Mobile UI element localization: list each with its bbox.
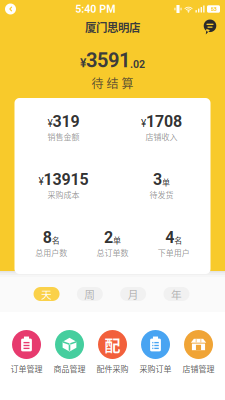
staticText: 厦门思明店 [85,19,140,35]
staticText: 63 [210,5,216,12]
staticText: 单 [113,234,121,246]
staticText: 店铺收入 [145,131,177,142]
staticText: 店铺管理 [182,363,214,374]
staticText: 待 结 算 [91,74,133,92]
button[interactable]: 周 [77,287,103,301]
button[interactable]: 店铺管理 [177,330,220,373]
button[interactable]: 消息 [199,17,221,37]
staticText: 采购成本 [47,189,79,200]
staticText: 配件采购 [96,363,128,374]
staticText: 订单管理 [10,363,42,374]
staticText: 3591 [86,49,130,72]
staticText: 周 [84,286,95,302]
button[interactable]: 返回 [5,3,16,14]
staticText: 总用户数 [35,247,67,258]
staticText: 年 [171,286,182,302]
button[interactable]: 天 [33,287,59,301]
button[interactable]: ¥ [14,115,112,141]
staticText: 13915 [43,170,88,189]
staticText: 销售金额 [47,131,79,142]
button[interactable]: 月 [120,287,146,301]
staticText: 单 [162,176,170,188]
staticText: 1708 [146,112,182,131]
button[interactable]: 2 [82,231,143,257]
button[interactable]: 8 [20,231,82,257]
staticText: 待发货 [149,189,173,200]
button[interactable]: 4 [143,231,204,257]
staticText: ¥ [38,176,43,187]
staticText: 总订单数 [96,247,128,258]
staticText: 月 [128,286,139,302]
staticText: 319 [52,112,79,131]
staticText: 名 [52,234,60,246]
button[interactable]: ¥ [14,173,112,199]
staticText: 2 [104,228,113,247]
staticText: 天 [41,286,52,302]
staticText: 3 [153,170,162,189]
staticText: ¥ [80,56,86,70]
staticText: 名 [174,234,182,246]
staticText: 8 [43,228,52,247]
button[interactable]: 年 [163,287,189,301]
staticText: ¥ [141,118,146,129]
staticText: 采购订单 [139,363,171,374]
staticText: 商品管理 [53,363,85,374]
button[interactable]: 订单管理 [5,330,48,373]
staticText: 4 [165,228,174,247]
button[interactable]: 采购订单 [134,330,177,373]
staticText: 下单用户 [158,247,190,258]
button[interactable]: 3 [112,173,210,199]
staticText: 配 [104,333,120,356]
button[interactable]: 配 [91,330,134,373]
button[interactable]: 商品管理 [48,330,91,373]
staticText: .02 [130,58,145,71]
staticText: 5:40 PM [75,3,115,15]
button[interactable]: ¥ [112,115,210,141]
staticText: ¥ [47,118,52,129]
